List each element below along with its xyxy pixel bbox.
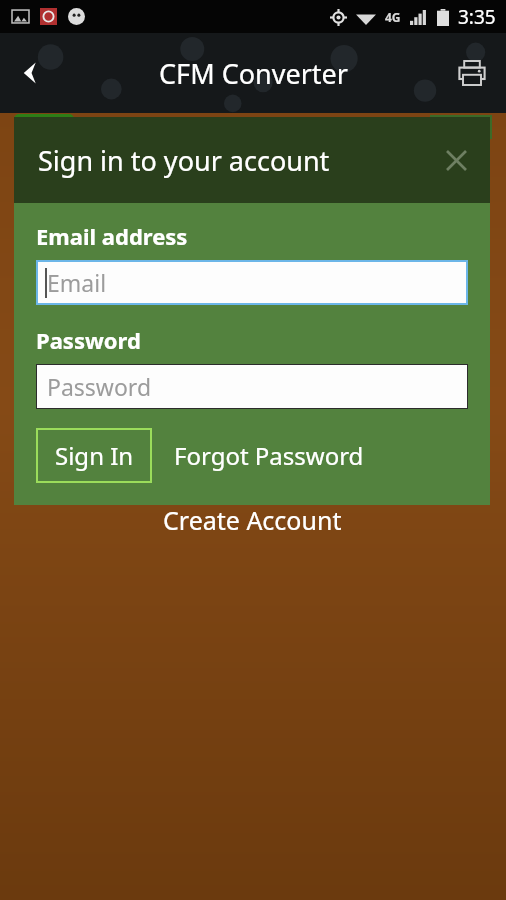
staticText: 3:35 — [458, 4, 496, 30]
button[interactable]: Password — [36, 364, 468, 409]
staticText: Email — [47, 267, 107, 298]
staticText: Email address — [36, 221, 188, 251]
button[interactable]: Back — [4, 47, 56, 99]
staticText: 4G — [385, 9, 401, 25]
button[interactable]: Close — [436, 140, 476, 180]
staticText: CFM Converter — [159, 55, 348, 92]
staticText: Password — [36, 325, 141, 355]
staticText: Create Account — [163, 503, 342, 537]
staticText: Forgot Password — [174, 439, 364, 472]
staticText: Password — [47, 371, 152, 402]
staticText: Sign In — [55, 439, 134, 472]
staticText: Convert CFM to SCFM — [50, 430, 283, 461]
staticText: Sign in to your account — [38, 142, 330, 179]
button[interactable]: Create Account — [163, 503, 342, 537]
button[interactable]: Print — [446, 47, 498, 99]
button[interactable]: Forgot Password — [174, 439, 364, 472]
button[interactable]: Email — [36, 260, 468, 305]
button[interactable]: Sign In — [36, 428, 152, 483]
